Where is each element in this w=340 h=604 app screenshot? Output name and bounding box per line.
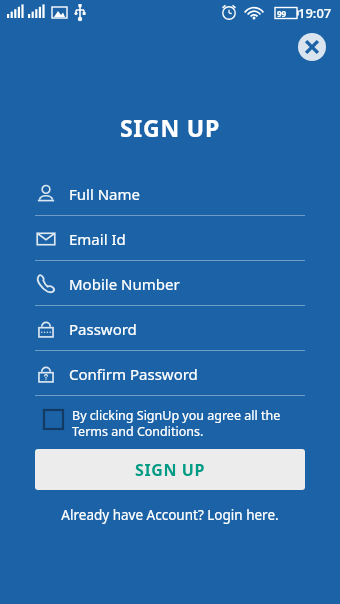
staticText: SIGN UP	[135, 459, 206, 481]
button[interactable]: Full Name	[0, 173, 340, 218]
staticText: Already have Account? Login here.	[61, 506, 279, 524]
button[interactable]: By clicking SignUp you agree all the Ter…	[44, 407, 310, 439]
staticText: Mobile Number	[69, 274, 180, 294]
staticText: By clicking SignUp you agree all the Ter…	[72, 407, 281, 439]
button[interactable]: SIGN UP	[35, 449, 305, 490]
button[interactable]: Password	[0, 308, 340, 353]
staticText: Full Name	[69, 184, 140, 204]
staticText: 99	[277, 8, 287, 19]
button[interactable]: Already have Account? Login here.	[0, 506, 340, 524]
button[interactable]: Confirm Password	[0, 353, 340, 398]
staticText: SIGN UP	[0, 112, 340, 143]
staticText: Confirm Password	[69, 364, 198, 384]
staticText: 19:07	[298, 4, 332, 22]
button[interactable]: Close	[298, 33, 326, 61]
button[interactable]: Mobile Number	[0, 263, 340, 308]
staticText: Password	[69, 319, 137, 339]
staticText: Email Id	[69, 229, 126, 249]
button[interactable]: Email Id	[0, 218, 340, 263]
